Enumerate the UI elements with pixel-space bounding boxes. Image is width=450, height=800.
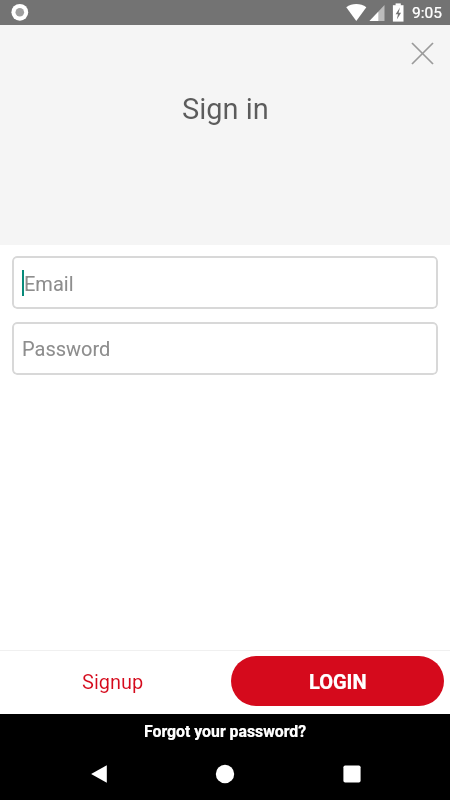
button[interactable]: LOGIN (231, 656, 444, 706)
staticText: Forgot your password? (144, 722, 307, 741)
button[interactable]: Recent apps (324, 746, 380, 800)
button[interactable]: Forgot your password? (144, 717, 307, 745)
button[interactable]: Email (12, 256, 438, 309)
button[interactable]: Home (197, 746, 253, 800)
staticText: Signup (82, 670, 144, 693)
button[interactable]: Back (71, 746, 127, 800)
staticText: Email (24, 272, 74, 295)
staticText: Password (22, 337, 111, 360)
staticText: 9:05 (412, 4, 442, 22)
button[interactable]: Password (12, 322, 438, 375)
button[interactable]: Signup (63, 656, 163, 706)
staticText: Sign in (182, 92, 269, 126)
staticText: LOGIN (309, 670, 367, 693)
button[interactable]: Close (401, 32, 444, 75)
